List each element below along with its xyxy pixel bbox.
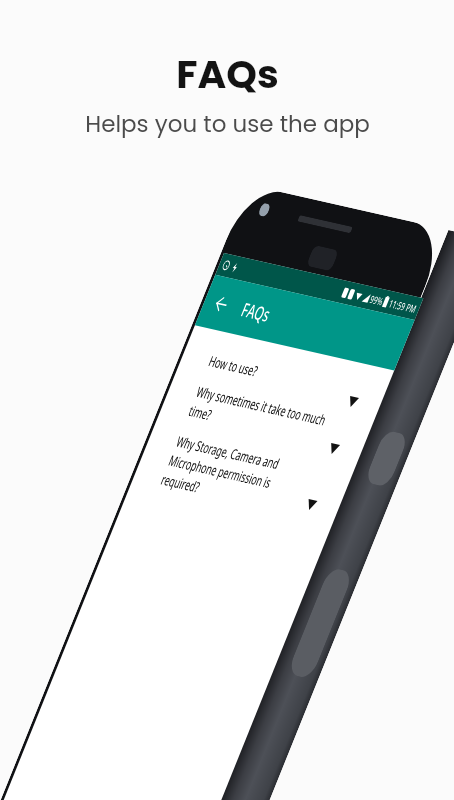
staticText: 99% <box>368 292 385 308</box>
staticText: Why Storage, Camera and Microphone permi… <box>158 432 311 518</box>
button[interactable]: How to use? <box>176 345 386 418</box>
staticText: FAQs <box>176 47 279 102</box>
button[interactable]: Back <box>209 290 233 317</box>
staticText: FAQs <box>238 297 275 327</box>
staticText: Why sometimes it take too much time? <box>186 382 331 449</box>
button[interactable]: Why Storage, Camera and Microphone permi… <box>134 432 351 521</box>
staticText: How to use? <box>206 351 343 399</box>
button[interactable]: Why sometimes it take too much time? <box>157 376 374 465</box>
staticText: Helps you to use the app <box>85 108 370 140</box>
staticText: 11:59 PM <box>387 296 419 316</box>
